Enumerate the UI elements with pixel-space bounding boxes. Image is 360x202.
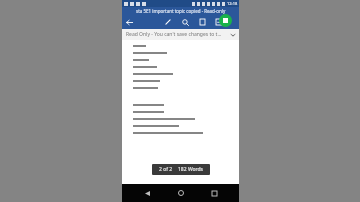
- button[interactable]: Edit: [161, 15, 175, 29]
- button[interactable]: Read Only - You can't save changes to t.…: [122, 29, 239, 40]
- button[interactable]: Screen recorder: [219, 14, 232, 27]
- button[interactable]: Search: [178, 15, 192, 29]
- button[interactable]: Back: [122, 15, 136, 29]
- staticText: Read Only - You can't save changes to t.…: [126, 31, 231, 38]
- button[interactable]: Recents: [206, 185, 222, 201]
- button[interactable]: Mobile view: [195, 15, 209, 29]
- staticText: 182 Words: [178, 166, 203, 173]
- staticText: 12:18: [227, 1, 238, 6]
- button[interactable]: 2 of 2: [152, 164, 210, 175]
- button[interactable]: Save: [212, 15, 226, 29]
- staticText: 2 of 2: [159, 166, 173, 173]
- staticText: sta 5E1 important topic copied - Read-on…: [136, 8, 226, 14]
- button[interactable]: Home: [173, 185, 189, 201]
- button[interactable]: Back: [139, 185, 155, 201]
